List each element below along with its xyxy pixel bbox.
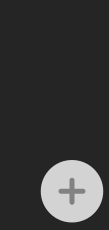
button[interactable]: Add [41, 160, 103, 222]
